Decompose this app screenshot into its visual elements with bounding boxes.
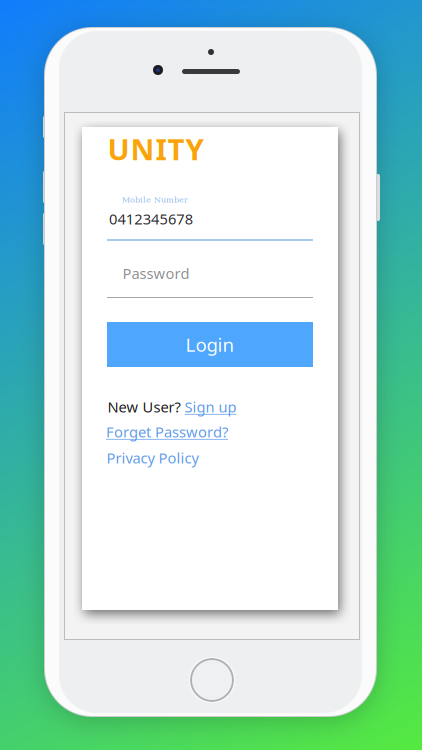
- staticText: 0412345678: [109, 209, 193, 228]
- staticText: Mobile Number: [122, 195, 188, 204]
- button[interactable]: Forget Password?: [106, 422, 228, 441]
- button[interactable]: Login: [107, 322, 313, 367]
- staticText: Forget Password?: [106, 422, 228, 441]
- staticText: Login: [185, 332, 234, 357]
- button[interactable]: Privacy Policy: [106, 448, 198, 467]
- staticText: New User?: [107, 397, 180, 416]
- button[interactable]: Sign up: [184, 397, 236, 416]
- staticText: Privacy Policy: [106, 448, 198, 467]
- staticText: Sign up: [184, 397, 236, 416]
- staticText: Password: [122, 263, 189, 283]
- staticText: UNITY: [107, 129, 203, 168]
